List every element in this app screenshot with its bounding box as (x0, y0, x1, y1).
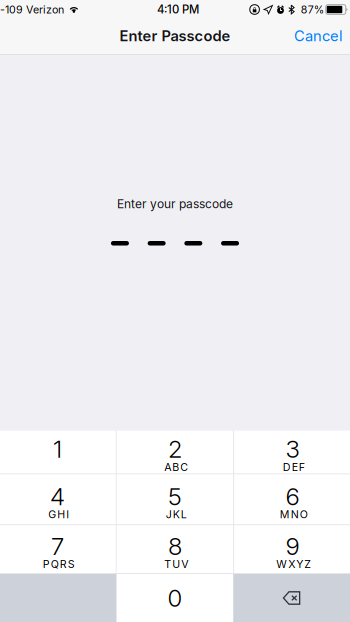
staticText: 8 (168, 532, 182, 561)
staticText: 87% (301, 3, 324, 16)
staticText: Enter Passcode (119, 27, 230, 45)
staticText: 2 (168, 435, 182, 464)
staticText: 0 (167, 583, 182, 612)
staticText: 1 (53, 435, 62, 464)
staticText: Enter your passcode (117, 196, 233, 211)
staticText: WXYZ (276, 558, 311, 571)
staticText: TUV (164, 558, 188, 571)
staticText: GHI (48, 508, 69, 521)
staticText: 5 (168, 482, 182, 511)
staticText: 3 (285, 435, 299, 464)
staticText: JKL (166, 508, 187, 521)
staticText: MNO (280, 508, 308, 521)
button[interactable]: 1 (0, 431, 116, 474)
staticText: Cancel (294, 27, 343, 45)
button[interactable]: 6 (234, 474, 350, 524)
button[interactable]: 2 (117, 431, 233, 474)
button[interactable]: Delete (233, 574, 350, 622)
button[interactable]: 5 (117, 474, 233, 524)
staticText: 4 (50, 482, 65, 511)
button[interactable]: Cancel (280, 20, 350, 53)
staticText: DEF (283, 461, 305, 473)
staticText: -109 Verizon (0, 3, 64, 16)
staticText: 7 (51, 532, 64, 561)
staticText: 4:10 PM (157, 3, 199, 16)
button[interactable]: 4 (0, 474, 116, 524)
staticText: ABC (164, 461, 188, 473)
staticText: 6 (285, 482, 299, 511)
button[interactable]: 8 (117, 525, 233, 573)
button[interactable]: 0 (117, 574, 233, 622)
button[interactable]: 9 (234, 525, 350, 573)
button[interactable]: 7 (0, 525, 116, 573)
staticText: 9 (285, 532, 299, 561)
staticText: PQRS (43, 558, 75, 571)
button[interactable]: 3 (234, 431, 350, 474)
